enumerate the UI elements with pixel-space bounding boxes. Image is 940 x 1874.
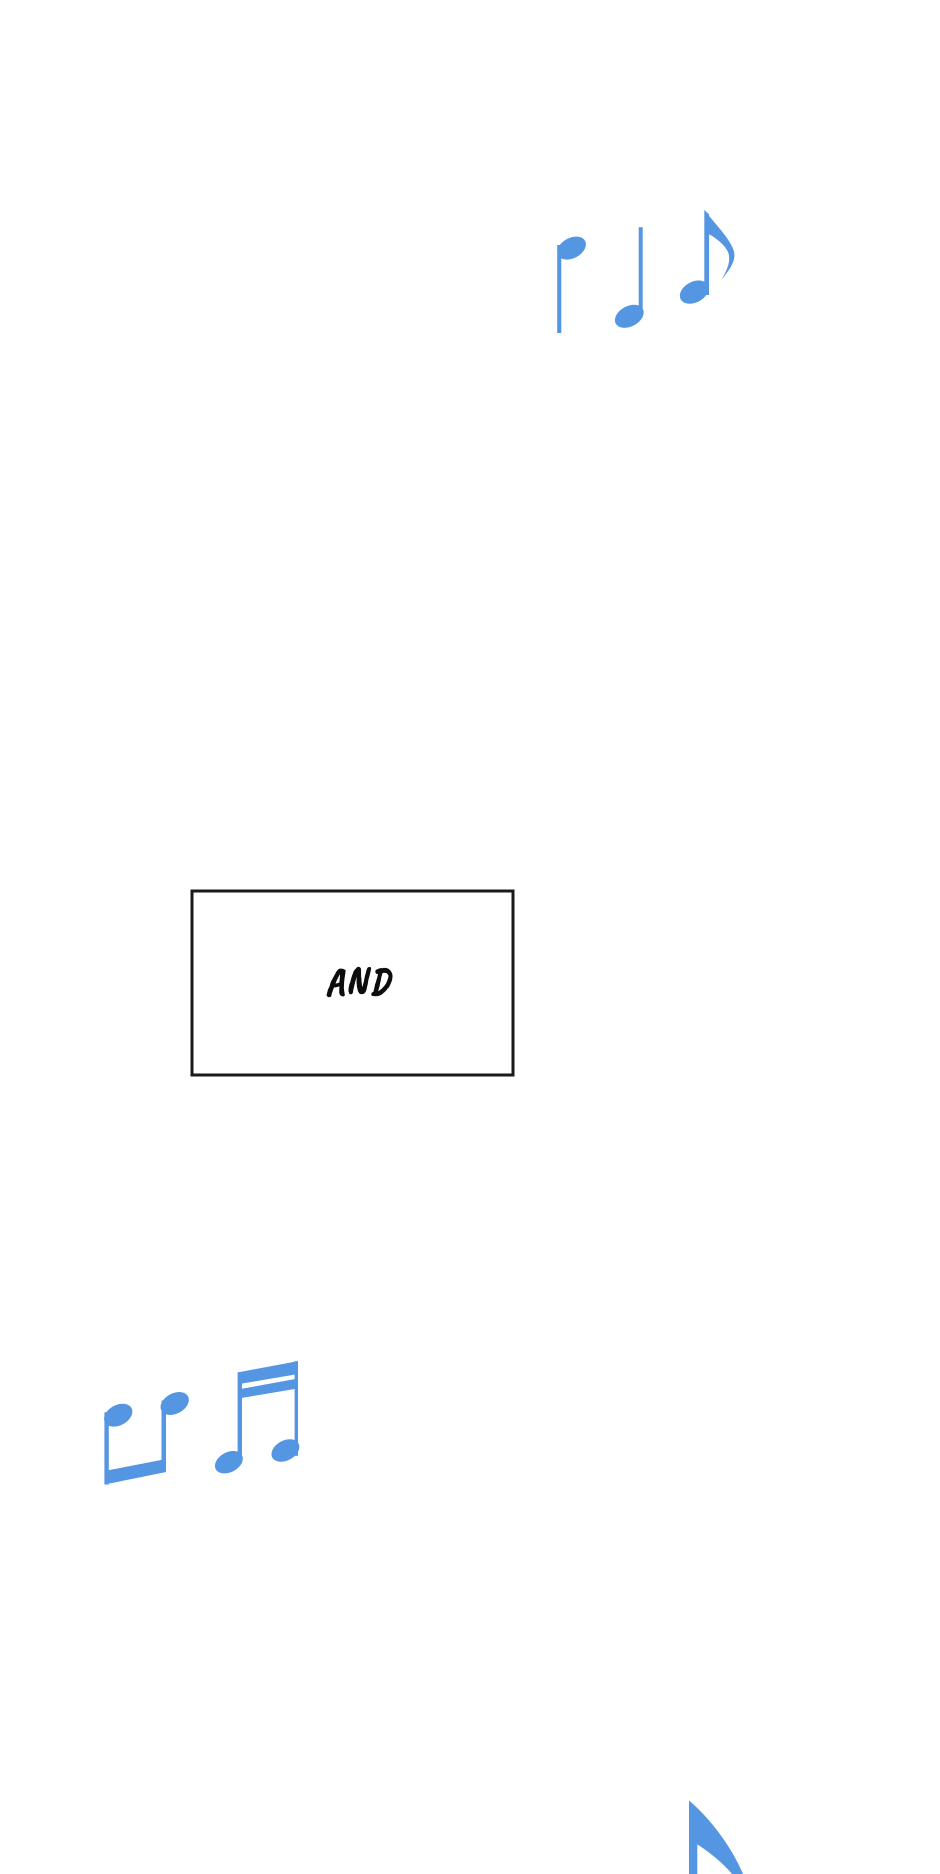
button[interactable]: AND bbox=[192, 891, 513, 1075]
staticText: AND bbox=[325, 954, 391, 1008]
